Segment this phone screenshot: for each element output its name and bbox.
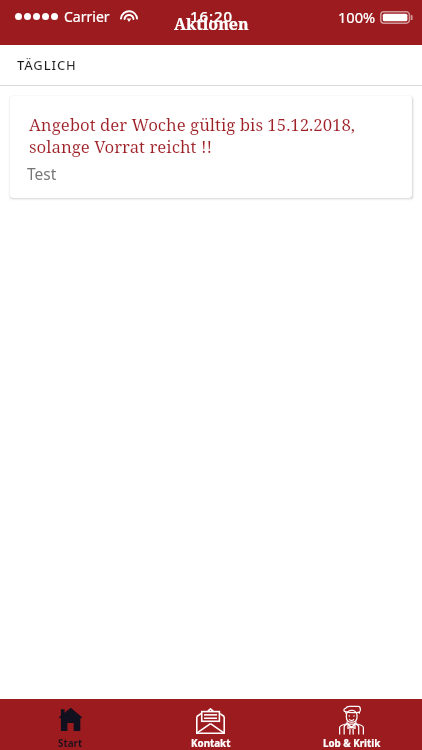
staticText: Start — [58, 737, 83, 750]
button[interactable]: Start — [0, 699, 140, 750]
other: Lob & Kritik — [339, 706, 364, 734]
button[interactable]: Angebot der Woche gültig bis 15.12.2018,… — [10, 96, 412, 198]
button[interactable]: Kontakt — [140, 699, 281, 750]
staticText: Kontakt — [191, 737, 231, 750]
staticText: Angebot der Woche gültig bis 15.12.2018,… — [29, 113, 356, 158]
staticText: 100% — [338, 7, 376, 27]
staticText: Test — [27, 163, 57, 184]
button[interactable]: Lob & Kritik — [281, 699, 422, 750]
other: Kontakt — [196, 708, 225, 734]
other: Start — [59, 708, 82, 731]
staticText: TÄGLICH — [17, 56, 77, 74]
staticText: 16:20 — [190, 6, 233, 26]
staticText: Aktionen — [174, 13, 249, 35]
staticText: Lob & Kritik — [323, 737, 381, 750]
staticText: Carrier — [64, 7, 110, 26]
